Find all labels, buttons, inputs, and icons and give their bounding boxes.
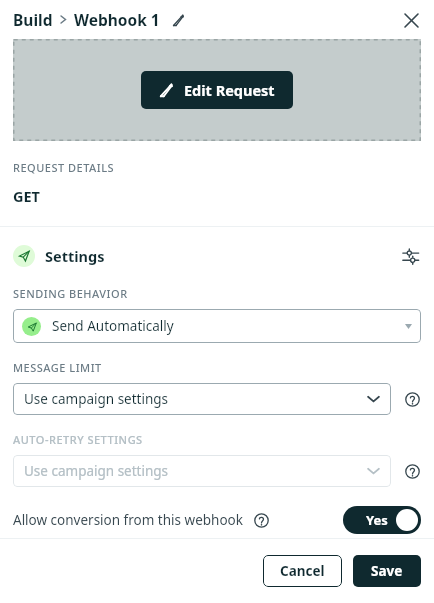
staticText: Save [371, 562, 403, 580]
staticText: GET [13, 186, 40, 206]
button[interactable]: Yes [343, 506, 421, 534]
staticText: Yes [366, 511, 388, 529]
button[interactable]: Save [353, 555, 421, 587]
button[interactable]: Conversion help [251, 510, 271, 530]
button[interactable]: Cancel [263, 555, 342, 587]
staticText: SENDING BEHAVIOR [13, 286, 128, 301]
button[interactable]: Use campaign settings [13, 383, 391, 415]
button[interactable]: Edit Request [141, 71, 293, 109]
button[interactable]: Close [398, 7, 424, 33]
staticText: Use campaign settings [24, 462, 169, 480]
button[interactable]: Advanced settings [397, 243, 423, 269]
staticText: REQUEST DETAILS [13, 160, 115, 175]
staticText: Cancel [280, 562, 325, 580]
button[interactable]: Auto-retry help [401, 460, 423, 482]
staticText: AUTO-RETRY SETTINGS [13, 432, 143, 447]
staticText: Edit Request [184, 80, 275, 100]
staticText: Use campaign settings [24, 390, 169, 408]
staticText: Build [13, 9, 53, 30]
staticText: Send Automatically [52, 317, 174, 335]
staticText: Webhook 1 [74, 9, 160, 30]
button[interactable]: Message limit help [401, 388, 423, 410]
button[interactable]: Send Automatically [13, 309, 421, 343]
button[interactable]: Rename webhook [168, 10, 188, 30]
button[interactable]: Use campaign settings [13, 455, 391, 487]
staticText: Allow conversion from this webhook [13, 511, 243, 529]
staticText: MESSAGE LIMIT [13, 360, 102, 375]
staticText: Settings [45, 246, 105, 266]
